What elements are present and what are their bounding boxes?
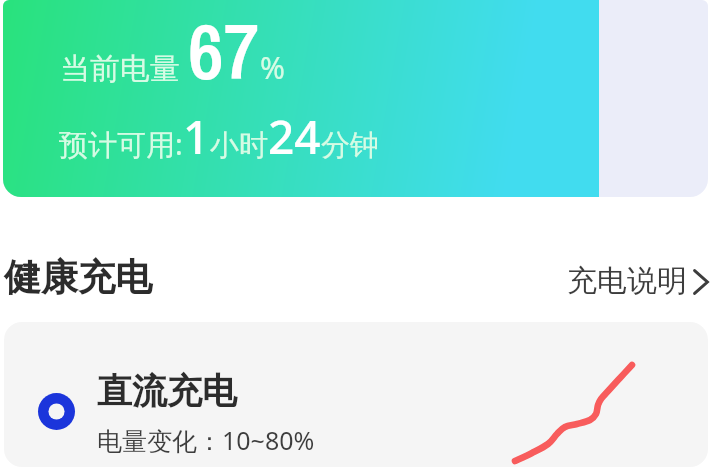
button[interactable]: 充电说明	[567, 258, 712, 296]
staticText: %	[260, 47, 285, 88]
other: Open charging instructions	[693, 269, 709, 295]
other: Direct current charging selected	[38, 393, 75, 430]
staticText: 电量变化：10~80%	[97, 423, 315, 457]
staticText: 充电说明	[567, 262, 687, 300]
button[interactable]: Direct current charging selected	[4, 322, 708, 467]
staticText: 健康充电	[4, 254, 152, 301]
staticText: 预计可用:	[59, 124, 183, 164]
staticText: 小时	[210, 127, 268, 164]
staticText: 24	[268, 105, 321, 168]
staticText: 67	[188, 0, 260, 103]
staticText: 1	[183, 105, 210, 168]
button[interactable]: 当前电量	[3, 0, 708, 197]
staticText: 直流充电	[97, 369, 237, 413]
staticText: 当前电量	[60, 47, 188, 88]
staticText: 分钟	[321, 127, 379, 164]
